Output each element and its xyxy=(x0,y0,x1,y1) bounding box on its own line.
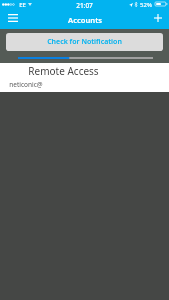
staticText: neticonic@ xyxy=(9,80,43,89)
button[interactable]: Remote Access xyxy=(0,63,169,92)
staticText: Check for Notification xyxy=(47,37,122,47)
staticText: EE xyxy=(19,1,26,9)
staticText: 52% xyxy=(140,1,152,9)
staticText: Accounts xyxy=(68,15,102,25)
button[interactable]: Check for Notification xyxy=(6,33,163,51)
button[interactable]: Add account xyxy=(149,11,169,29)
staticText: Remote Access xyxy=(28,64,99,78)
button[interactable]: Menu xyxy=(3,11,23,29)
staticText: 21:07 xyxy=(76,1,93,10)
